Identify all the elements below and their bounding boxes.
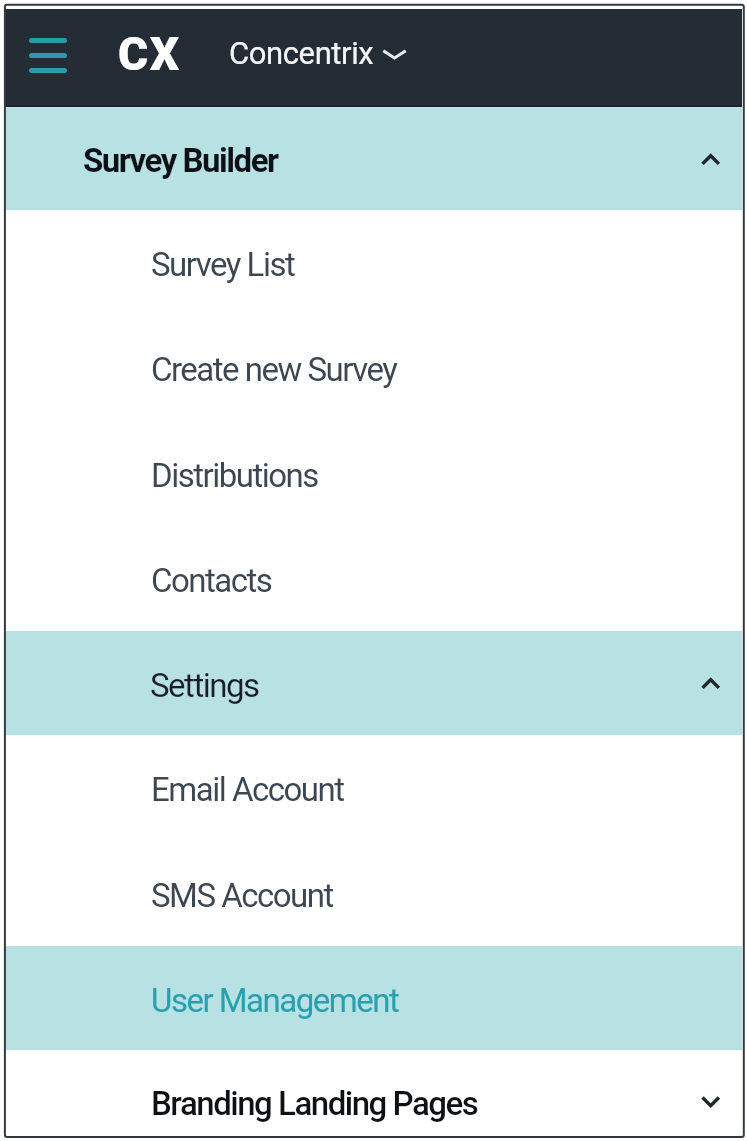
button[interactable]: Distributions bbox=[5, 420, 742, 526]
staticText: Survey List bbox=[151, 245, 295, 284]
staticText: Survey Builder bbox=[83, 141, 278, 180]
staticText: Settings bbox=[150, 666, 259, 705]
staticText: Create new Survey bbox=[151, 350, 397, 389]
button[interactable]: User Management bbox=[5, 946, 742, 1050]
staticText: User Management bbox=[151, 981, 399, 1020]
staticText: SMS Account bbox=[151, 876, 333, 915]
button[interactable]: Branding Landing Pages bbox=[5, 1050, 742, 1141]
button[interactable] bbox=[24, 33, 72, 81]
staticText: Branding Landing Pages bbox=[151, 1084, 478, 1123]
staticText: Concentrix bbox=[229, 35, 374, 71]
staticText: Distributions bbox=[151, 456, 318, 495]
button[interactable]: Contacts bbox=[5, 526, 742, 631]
button[interactable]: SMS Account bbox=[5, 840, 742, 946]
staticText: Email Account bbox=[151, 770, 344, 809]
staticText: CX bbox=[118, 27, 181, 81]
button[interactable]: Email Account bbox=[5, 735, 742, 840]
button[interactable]: Create new Survey bbox=[5, 315, 742, 420]
button[interactable]: Settings bbox=[5, 631, 742, 735]
button[interactable]: Survey Builder bbox=[5, 107, 742, 210]
button[interactable]: Survey List bbox=[5, 210, 742, 315]
staticText: Contacts bbox=[151, 561, 272, 600]
button[interactable]: Concentrix bbox=[229, 35, 406, 71]
